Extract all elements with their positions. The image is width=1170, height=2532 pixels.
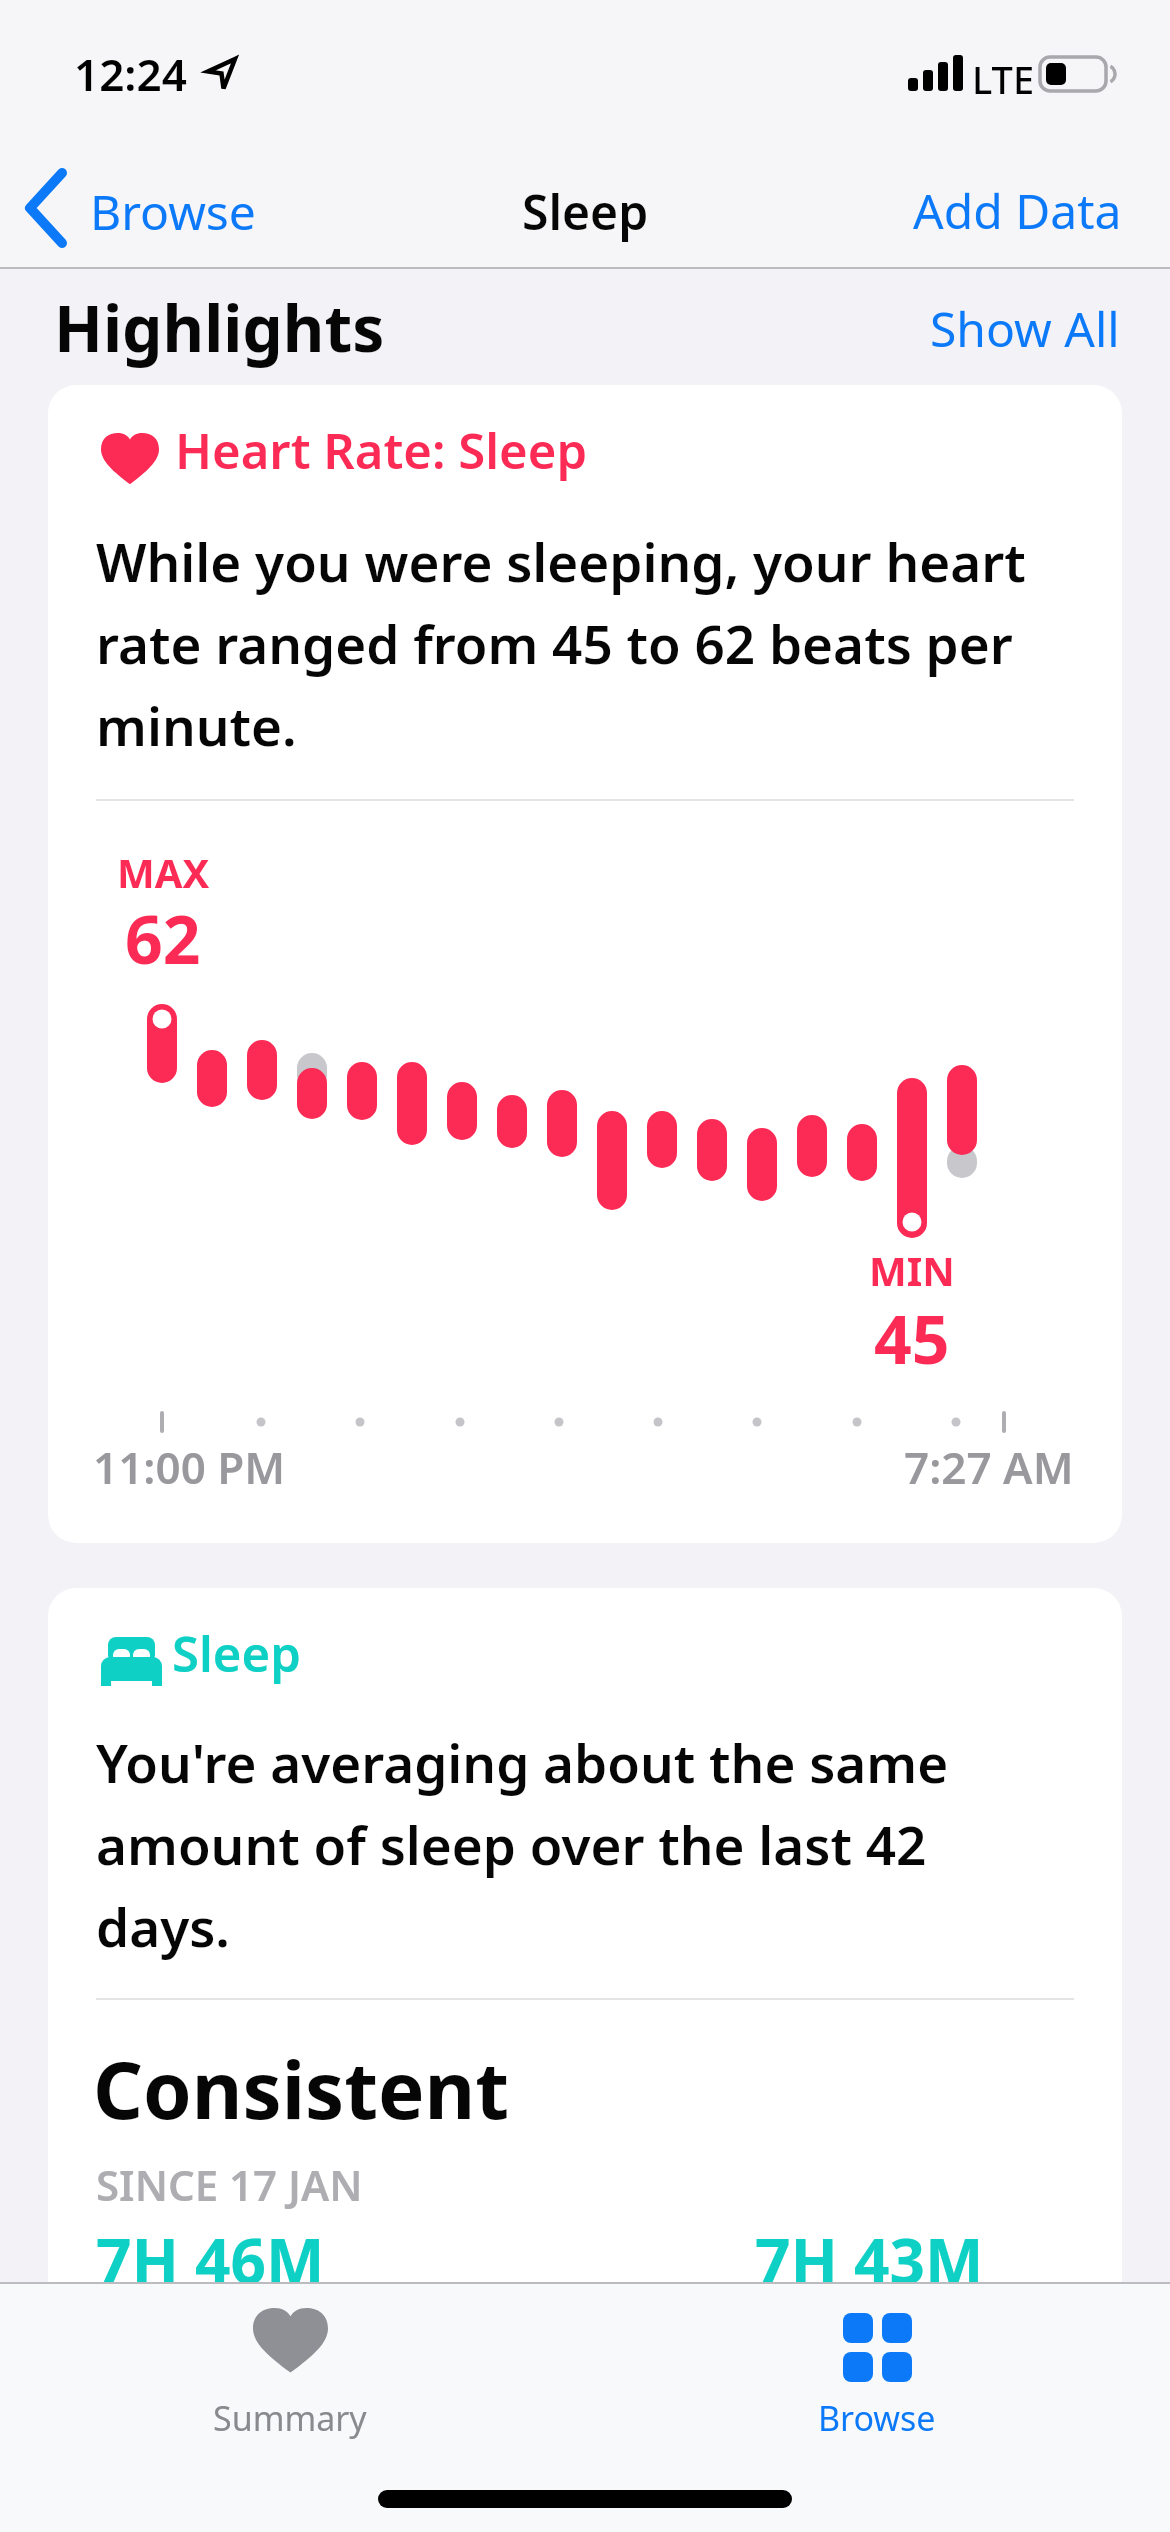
staticText: Sleep [522, 179, 649, 244]
button[interactable]: Add Data [860, 165, 1122, 255]
staticText: rate ranged from 45 to 62 beats per [96, 607, 1013, 679]
button[interactable]: Sleep [48, 1588, 1122, 2308]
staticText: 62 [125, 893, 201, 983]
staticText: 7H 43M [755, 2218, 984, 2302]
staticText: Consistent [93, 2036, 510, 2142]
staticText: MAX [117, 845, 210, 899]
staticText: Heart Rate: Sleep [175, 417, 588, 484]
staticText: 7H 46M [96, 2218, 325, 2302]
staticText: You're averaging about the same [96, 1726, 949, 1798]
staticText: 12:24 [74, 44, 187, 104]
staticText: amount of sleep over the last 42 [96, 1808, 927, 1880]
button[interactable]: Browse [16, 162, 276, 254]
button[interactable]: Show All [880, 296, 1120, 358]
staticText: SINCE 17 JAN [96, 2156, 363, 2213]
staticText: 45 [874, 1293, 950, 1383]
staticText: Add Data [913, 178, 1122, 243]
staticText: LTE [972, 53, 1035, 105]
button[interactable]: Browse [757, 2292, 997, 2452]
staticText: While you were sleeping, your heart [96, 525, 1026, 597]
button[interactable]: Heart Rate: Sleep [48, 385, 1122, 1543]
staticText: Browse [818, 2395, 936, 2441]
staticText: Sleep [172, 1620, 301, 1687]
staticText: Summary [213, 2395, 367, 2441]
button[interactable]: Summary [170, 2292, 410, 2452]
staticText: minute. [96, 689, 297, 761]
staticText: Show All [930, 296, 1120, 358]
staticText: Browse [90, 179, 256, 244]
staticText: Highlights [54, 284, 385, 371]
staticText: 11:00 PM [93, 1437, 286, 1497]
staticText: 7:27 AM [904, 1437, 1074, 1497]
staticText: MIN [869, 1243, 955, 1297]
staticText: days. [96, 1890, 230, 1962]
